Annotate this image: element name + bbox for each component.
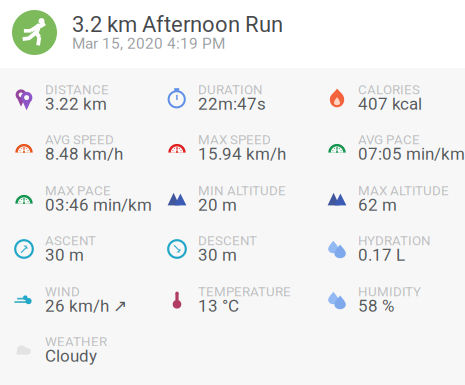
staticText: WIND	[45, 284, 80, 300]
button[interactable]: AVG PACE	[327, 130, 465, 164]
staticText: 58 %	[358, 296, 394, 316]
staticText: 20 m	[198, 195, 237, 215]
button[interactable]: TEMPERATURE	[167, 282, 307, 316]
button[interactable]: WEATHER	[14, 332, 154, 366]
staticText: 22m:47s	[198, 94, 266, 114]
staticText: AVG PACE	[358, 132, 420, 148]
staticText: 26 km/h ↗	[45, 296, 127, 316]
staticText: 30 m	[198, 245, 237, 265]
button[interactable]: MAX PACE	[14, 181, 154, 215]
staticText: ASCENT	[45, 233, 96, 249]
button[interactable]: 3.2 km Afternoon Run	[0, 0, 465, 68]
button[interactable]: DISTANCE	[14, 80, 154, 114]
staticText: Mar 15, 2020 4:19 PM	[72, 34, 225, 52]
staticText: HYDRATION	[358, 233, 431, 249]
staticText: HUMIDITY	[358, 284, 421, 300]
button[interactable]: WIND	[14, 282, 154, 316]
staticText: CALORIES	[358, 82, 420, 98]
staticText: 15.94 km/h	[198, 144, 286, 164]
staticText: 62 m	[358, 195, 397, 215]
staticText: MAX SPEED	[198, 132, 271, 148]
staticText: MAX ALTITUDE	[358, 183, 449, 199]
staticText: 0.17 L	[358, 245, 405, 265]
staticText: AVG SPEED	[45, 132, 114, 148]
button[interactable]: MAX ALTITUDE	[327, 181, 465, 215]
button[interactable]: AVG SPEED	[14, 130, 154, 164]
staticText: MIN ALTITUDE	[198, 183, 286, 199]
staticText: 3.22 km	[45, 94, 107, 114]
staticText: 03:46 min/km	[45, 195, 152, 215]
button[interactable]: MAX SPEED	[167, 130, 307, 164]
staticText: MAX PACE	[45, 183, 111, 199]
staticText: 407 kcal	[358, 94, 422, 114]
staticText: 8.48 km/h	[45, 144, 123, 164]
staticText: 3.2 km Afternoon Run	[72, 11, 283, 37]
staticText: DURATION	[198, 82, 263, 98]
staticText: WEATHER	[45, 334, 107, 350]
button[interactable]: DURATION	[167, 80, 307, 114]
staticText: 13 °C	[198, 296, 239, 316]
button[interactable]: DESCENT	[167, 231, 307, 265]
button[interactable]: ASCENT	[14, 231, 154, 265]
staticText: Cloudy	[45, 346, 97, 366]
button[interactable]: HYDRATION	[327, 231, 465, 265]
staticText: DESCENT	[198, 233, 257, 249]
staticText: TEMPERATURE	[198, 284, 291, 300]
staticText: DISTANCE	[45, 82, 109, 98]
button[interactable]: MIN ALTITUDE	[167, 181, 307, 215]
staticText: 07:05 min/km	[358, 144, 465, 164]
button[interactable]: CALORIES	[327, 80, 465, 114]
staticText: 30 m	[45, 245, 84, 265]
button[interactable]: HUMIDITY	[327, 282, 465, 316]
